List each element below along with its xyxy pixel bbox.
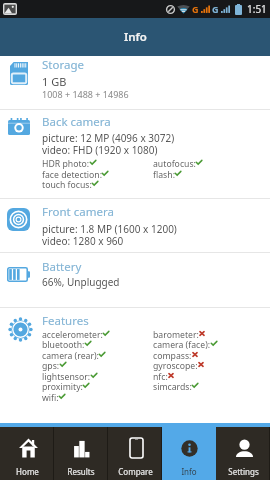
button[interactable]: Home — [0, 427, 54, 480]
staticText: accelerometer: — [42, 329, 103, 341]
staticText: camera (face): — [153, 339, 211, 351]
button[interactable] — [0, 110, 270, 198]
staticText: barometer: — [153, 329, 199, 341]
button[interactable] — [0, 253, 270, 307]
staticText: video: 1280 x 960 — [42, 234, 124, 248]
staticText: gyroscope: — [153, 360, 198, 372]
staticText: lightsensor: — [42, 371, 91, 383]
staticText: touch focus: — [42, 179, 92, 191]
staticText: Info — [124, 29, 147, 45]
staticText: camera (rear): — [42, 350, 99, 362]
staticText: face detection: — [42, 169, 102, 181]
button[interactable]: Info — [162, 427, 216, 480]
staticText: Results — [67, 466, 95, 477]
button[interactable] — [0, 308, 270, 423]
staticText: Info — [181, 466, 197, 477]
staticText: nfc: — [153, 371, 168, 383]
staticText: 66%, Unplugged — [42, 275, 120, 289]
staticText: G — [192, 3, 199, 15]
staticText: 1 GB — [42, 74, 67, 89]
staticText: wifi: — [42, 392, 59, 404]
staticText: G — [212, 3, 219, 15]
staticText: Settings — [228, 466, 259, 477]
staticText: bluetooth: — [42, 339, 85, 351]
button[interactable]: Results — [54, 427, 108, 480]
staticText: flash: — [153, 169, 175, 181]
staticText: 1:51 — [247, 2, 267, 16]
staticText: proximity: — [42, 381, 83, 393]
staticText: Compare — [118, 466, 153, 477]
button[interactable] — [0, 199, 270, 252]
staticText: autofocus: — [153, 158, 196, 170]
staticText: HDR photo: — [42, 158, 90, 170]
staticText: video: FHD (1920 x 1080) — [42, 143, 158, 157]
staticText: picture: 12 MP (4096 x 3072) — [42, 131, 175, 145]
staticText: compass: — [153, 350, 192, 362]
staticText: Storage — [42, 57, 84, 73]
staticText: Battery — [42, 259, 82, 275]
staticText: Features — [42, 313, 89, 329]
staticText: Back camera — [42, 114, 111, 130]
button[interactable]: Compare — [108, 427, 162, 480]
button[interactable]: Settings — [216, 427, 270, 480]
button[interactable] — [0, 56, 270, 109]
staticText: Front camera — [42, 204, 114, 220]
staticText: Home — [16, 466, 39, 477]
staticText: simcards: — [153, 381, 192, 393]
staticText: 1008 + 1488 + 14986 — [42, 88, 129, 100]
staticText: picture: 1.8 MP (1600 x 1200) — [42, 222, 177, 236]
staticText: gps: — [42, 360, 60, 372]
